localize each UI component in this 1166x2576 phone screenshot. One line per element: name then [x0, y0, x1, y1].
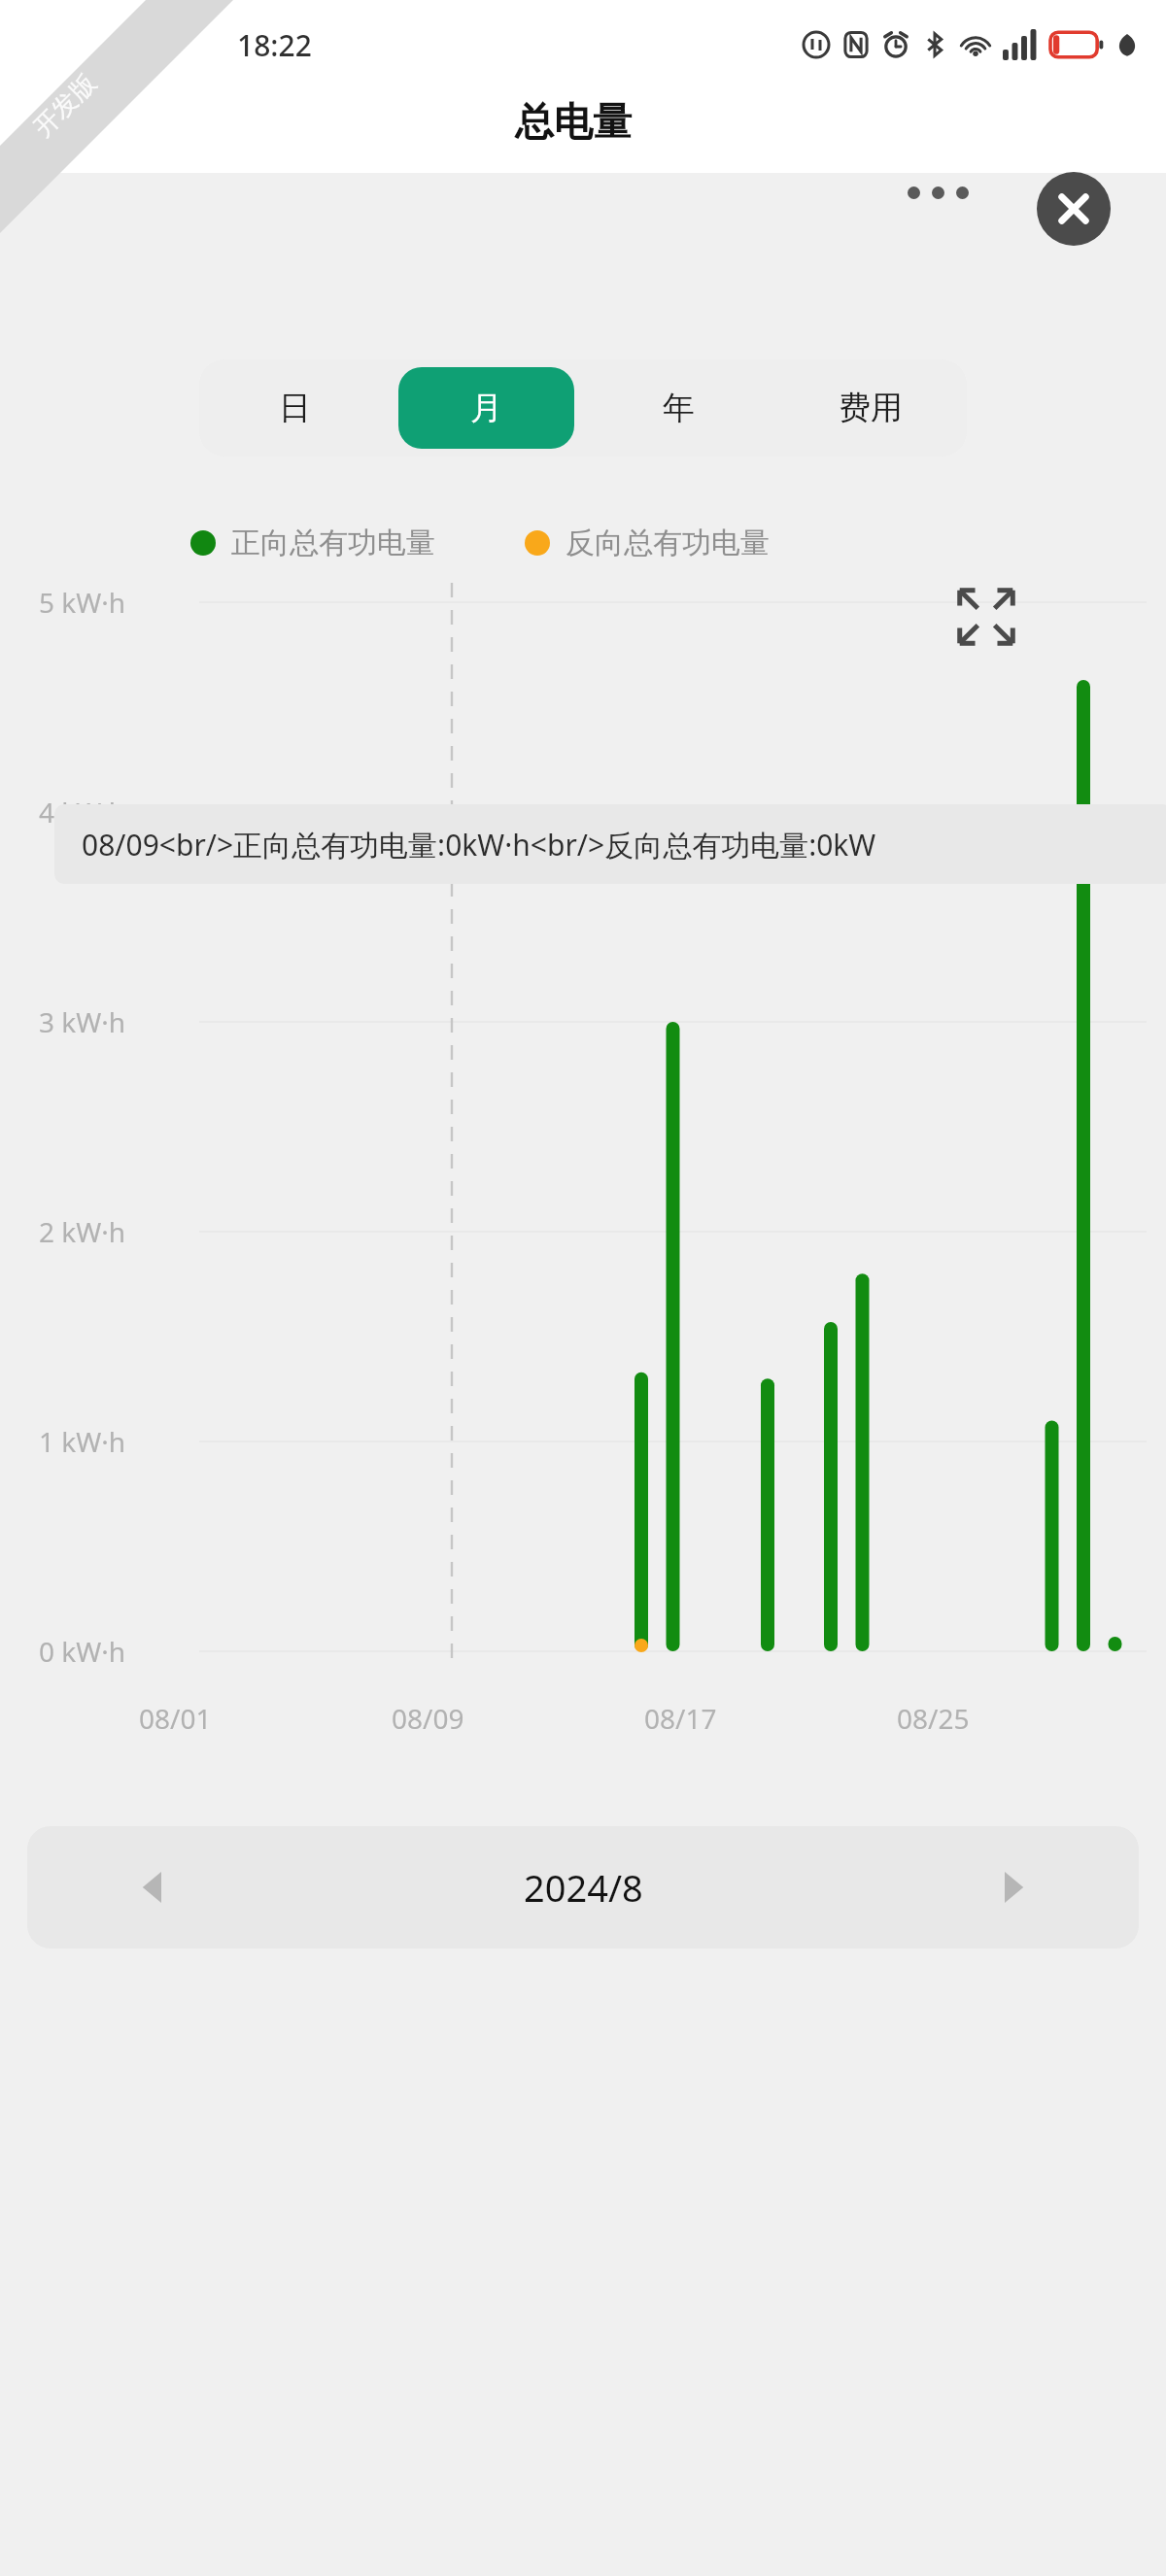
staticText: 5 kW·h: [39, 584, 126, 621]
staticText: 3 kW·h: [39, 1003, 126, 1040]
staticText: 4 kW·h: [39, 794, 126, 830]
button[interactable]: Fullscreen: [947, 578, 1025, 656]
staticText: 年: [663, 388, 695, 428]
staticText: 2024/8: [524, 1862, 643, 1913]
staticText: 18:22: [237, 25, 312, 65]
staticText: 开发版: [27, 67, 103, 144]
button[interactable]: Next month: [983, 1858, 1042, 1916]
staticText: 0 kW·h: [39, 1633, 126, 1670]
button[interactable]: 日: [207, 367, 383, 449]
staticText: 08/09<br/>正向总有功电量:0kW·h<br/>反向总有功电量:0kW: [82, 825, 876, 864]
button[interactable]: 费用: [782, 367, 959, 449]
staticText: 08/25: [897, 1700, 970, 1737]
button[interactable]: 月: [398, 367, 574, 449]
staticText: 1 kW·h: [39, 1423, 126, 1460]
button[interactable]: Previous month: [124, 1858, 183, 1916]
staticText: 2 kW·h: [39, 1213, 126, 1250]
button[interactable]: 年: [590, 367, 767, 449]
button[interactable]: More options: [892, 171, 984, 215]
staticText: 费用: [839, 388, 903, 428]
staticText: 08/01: [139, 1700, 212, 1737]
staticText: 08/17: [644, 1700, 717, 1737]
staticText: 正向总有功电量: [231, 525, 435, 561]
button[interactable]: Close: [1037, 172, 1111, 246]
staticText: 08/09: [392, 1700, 464, 1737]
staticText: 总电量: [515, 97, 632, 146]
button[interactable]: 2024/8: [27, 1826, 1139, 1949]
staticText: 反向总有功电量: [566, 525, 770, 561]
staticText: 月: [470, 388, 502, 428]
staticText: 日: [279, 388, 311, 428]
